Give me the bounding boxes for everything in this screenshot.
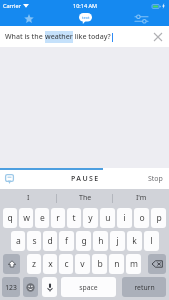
- button[interactable]: I: [0, 189, 57, 207]
- staticText: Carrier: [3, 2, 21, 9]
- button[interactable]: u: [100, 208, 115, 228]
- staticText: z: [32, 258, 36, 270]
- staticText: g: [81, 235, 87, 247]
- button[interactable]: Emoji: [23, 277, 38, 297]
- button[interactable]: return: [122, 277, 166, 297]
- button[interactable]: x: [43, 254, 57, 274]
- staticText: k: [132, 235, 137, 247]
- staticText: i: [123, 212, 126, 224]
- button[interactable]: PAUSE: [68, 172, 101, 186]
- staticText: o: [139, 212, 145, 224]
- staticText: 123: [5, 283, 17, 292]
- button[interactable]: v: [75, 254, 90, 274]
- button[interactable]: Stop: [142, 172, 169, 186]
- button[interactable]: Favorites: [0, 11, 57, 26]
- staticText: The: [79, 193, 92, 203]
- button[interactable]: l: [144, 231, 159, 251]
- button[interactable]: Dictate: [42, 277, 57, 297]
- staticText: I'm: [136, 193, 147, 203]
- staticText: like today?: [73, 32, 111, 42]
- button[interactable]: d: [43, 231, 57, 251]
- button[interactable]: s: [27, 231, 41, 251]
- button[interactable]: w: [19, 208, 33, 228]
- staticText: text: [82, 15, 90, 21]
- staticText: d: [47, 235, 53, 247]
- button[interactable]: h: [93, 231, 108, 251]
- staticText: l: [150, 235, 153, 247]
- button[interactable]: Settings: [113, 11, 169, 26]
- staticText: v: [80, 258, 85, 270]
- staticText: r: [56, 212, 60, 224]
- staticText: f: [65, 235, 68, 247]
- staticText: q: [7, 212, 13, 224]
- staticText: p: [156, 212, 162, 224]
- button[interactable]: p: [151, 208, 166, 228]
- button[interactable]: o: [134, 208, 149, 228]
- button[interactable]: q: [3, 208, 17, 228]
- staticText: y: [88, 212, 93, 224]
- button[interactable]: a: [11, 231, 25, 251]
- button[interactable]: Shift: [3, 254, 20, 274]
- staticText: Stop: [148, 174, 163, 184]
- staticText: a: [16, 235, 21, 247]
- button[interactable]: n: [109, 254, 124, 274]
- button[interactable]: f: [59, 231, 74, 251]
- staticText: What is the: [5, 32, 45, 42]
- staticText: u: [105, 212, 111, 224]
- button[interactable]: m: [126, 254, 141, 274]
- button[interactable]: r: [51, 208, 65, 228]
- staticText: PAUSE: [71, 174, 100, 184]
- button[interactable]: c: [59, 254, 73, 274]
- button[interactable]: z: [27, 254, 41, 274]
- staticText: m: [130, 258, 138, 270]
- staticText: I: [27, 193, 30, 203]
- staticText: space: [79, 283, 98, 292]
- button[interactable]: i: [117, 208, 132, 228]
- staticText: t: [72, 212, 76, 224]
- button[interactable]: Backspace: [148, 254, 166, 274]
- staticText: 10:14 AM: [73, 2, 97, 9]
- staticText: return: [134, 283, 155, 292]
- button[interactable]: e: [35, 208, 49, 228]
- staticText: e: [40, 212, 45, 224]
- staticText: s: [32, 235, 37, 247]
- staticText: w: [23, 212, 30, 224]
- button[interactable]: k: [127, 231, 142, 251]
- button[interactable]: I'm: [113, 189, 169, 207]
- button[interactable]: y: [83, 208, 98, 228]
- button[interactable]: j: [110, 231, 125, 251]
- button[interactable]: The: [57, 189, 113, 207]
- button[interactable]: Clear: [150, 29, 166, 45]
- staticText: h: [98, 235, 104, 247]
- button[interactable]: g: [76, 231, 91, 251]
- button[interactable]: t: [67, 208, 81, 228]
- button[interactable]: space: [61, 277, 116, 297]
- staticText: j: [116, 235, 119, 247]
- button[interactable]: Text chat: [57, 11, 113, 26]
- staticText: c: [64, 258, 69, 270]
- button[interactable]: b: [92, 254, 107, 274]
- staticText: weather: [45, 32, 73, 42]
- button[interactable]: Keyboard: [2, 172, 16, 186]
- staticText: x: [48, 258, 53, 270]
- button[interactable]: 123: [2, 277, 20, 297]
- staticText: n: [114, 258, 120, 270]
- staticText: b: [97, 258, 103, 270]
